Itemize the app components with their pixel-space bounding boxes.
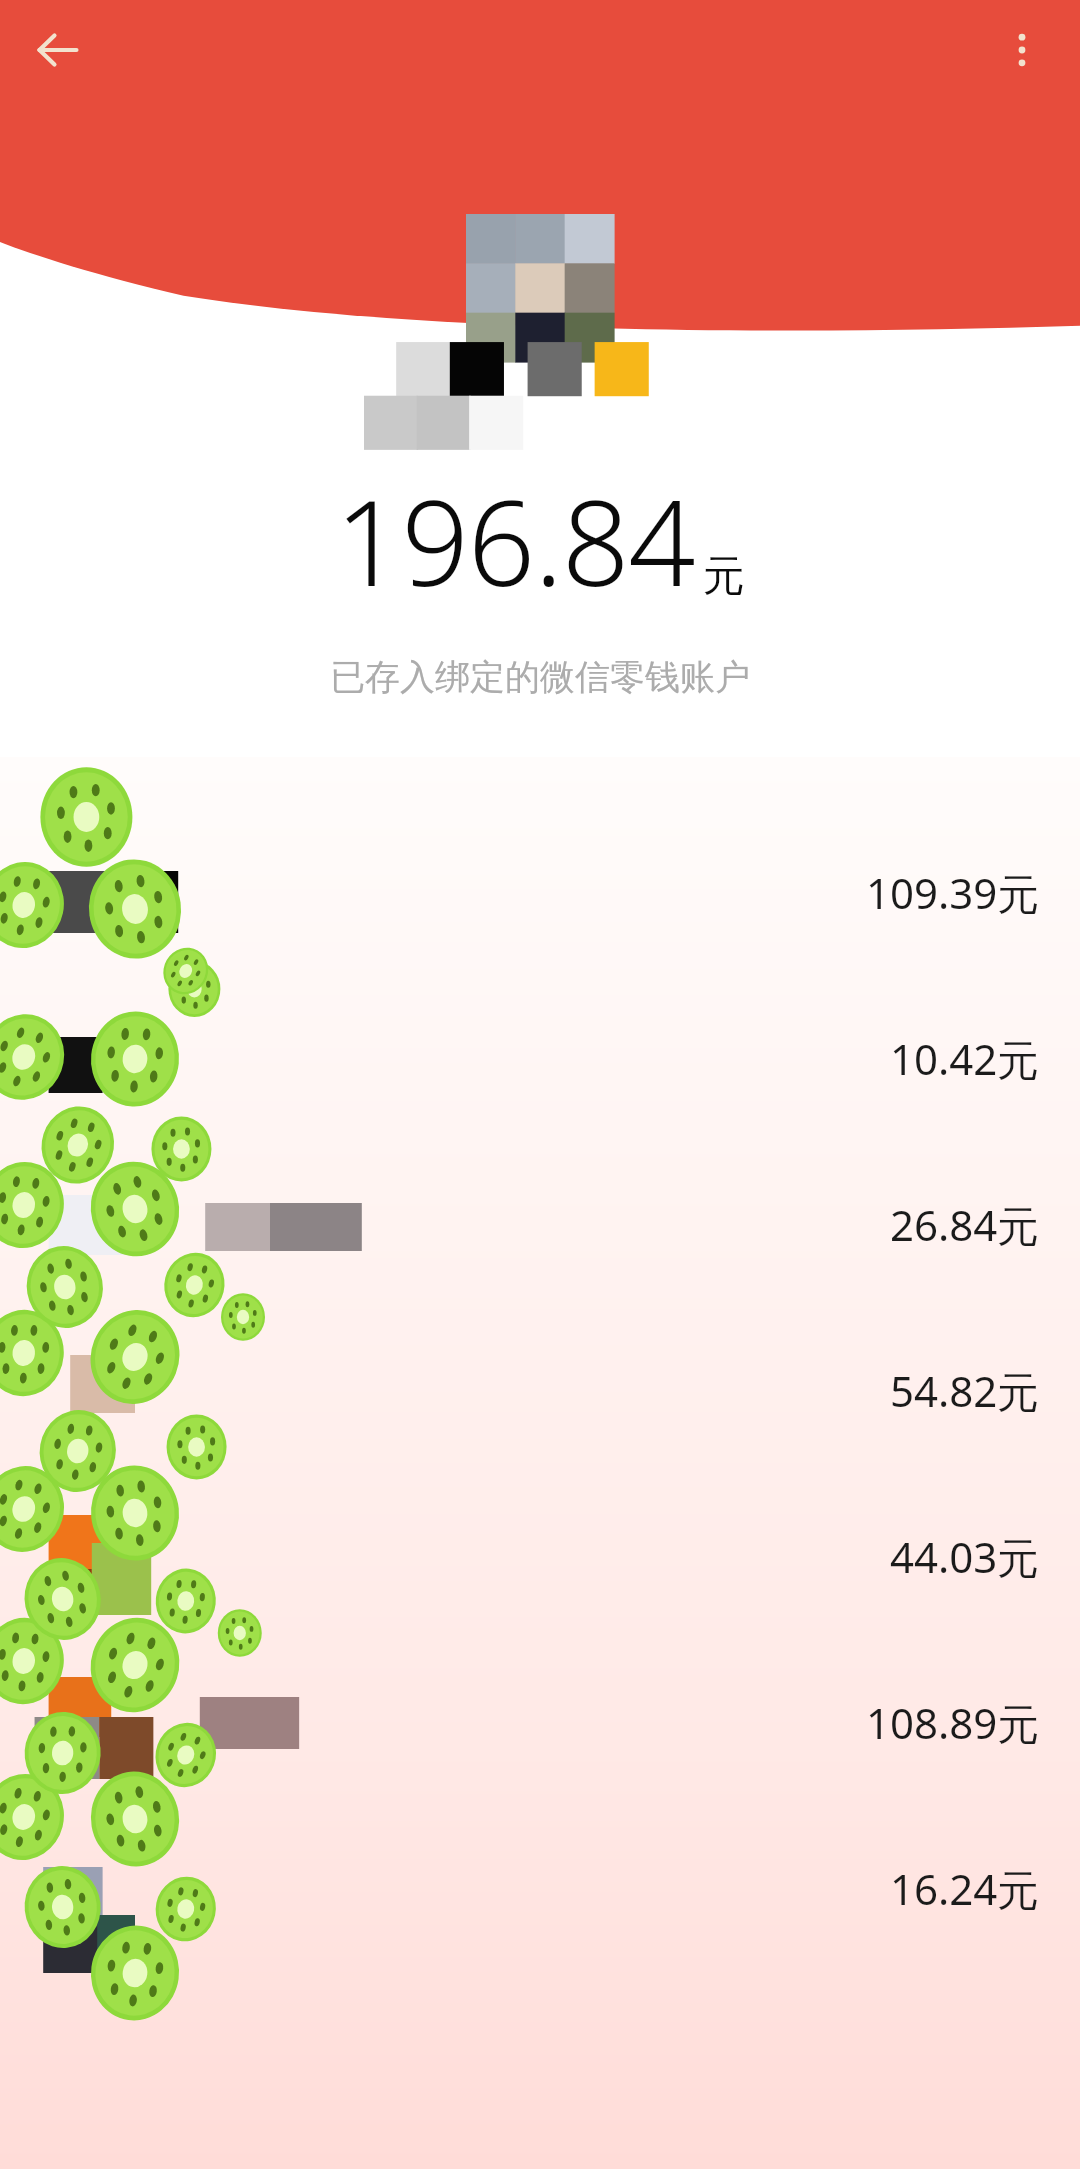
staticText: 26.84元 [890, 1196, 1040, 1253]
button[interactable]: 16.24元 [0, 1805, 1080, 1971]
staticText: 196.84 [335, 460, 695, 621]
staticText: 元 [703, 550, 745, 603]
button[interactable]: 108.89元 [0, 1639, 1080, 1805]
staticText: 44.03元 [890, 1528, 1040, 1585]
button[interactable]: 54.82元 [0, 1307, 1080, 1473]
staticText: 10.42元 [890, 1030, 1040, 1087]
button[interactable]: 26.84元 [0, 1141, 1080, 1307]
button[interactable]: 44.03元 [0, 1473, 1080, 1639]
button[interactable]: Back [22, 14, 94, 86]
staticText: 已存入绑定的微信零钱账户 [0, 655, 1080, 699]
button[interactable]: 10.42元 [0, 975, 1080, 1141]
staticText: 54.82元 [890, 1362, 1040, 1419]
button[interactable]: 109.39元 [0, 809, 1080, 975]
button[interactable]: More options [986, 14, 1058, 86]
staticText: 109.39元 [866, 864, 1040, 921]
staticText: 16.24元 [890, 1860, 1040, 1917]
staticText: 108.89元 [866, 1694, 1040, 1751]
